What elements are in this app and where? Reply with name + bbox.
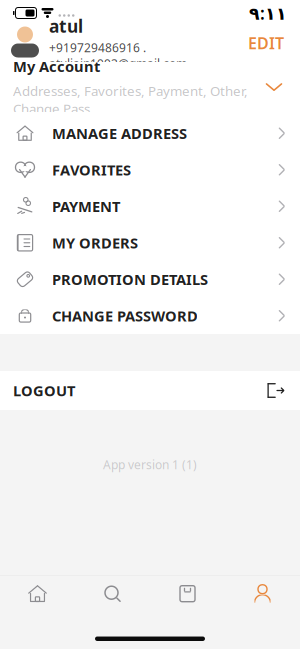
staticText: LOGOUT [13, 381, 75, 400]
button[interactable]: FAVORITES [0, 151, 300, 188]
staticText: MY ORDERS [52, 233, 138, 252]
button[interactable]: PROMOTION DETAILS [0, 261, 300, 297]
button[interactable]: Account [225, 576, 300, 612]
button[interactable]: MY ORDERS [0, 224, 300, 261]
button[interactable]: PAYMENT [0, 188, 300, 224]
staticText: Addresses, Favorites, Payment, Other, Ch… [13, 82, 248, 117]
button[interactable]: LOGOUT [0, 371, 300, 410]
staticText: My Account [13, 57, 100, 76]
staticText: +919729486916 . atuljain1993@gmail.com [49, 40, 187, 71]
button[interactable]: My Account [0, 62, 300, 112]
staticText: atul [49, 15, 83, 38]
button[interactable]: MANAGE ADDRESS [0, 115, 300, 151]
staticText: App version 1 (1) [103, 456, 197, 472]
staticText: PROMOTION DETAILS [52, 269, 208, 289]
button[interactable]: EDIT [238, 26, 294, 60]
button[interactable]: Home [0, 576, 75, 612]
staticText: ٩:١١ [249, 1, 287, 24]
button[interactable]: Search [75, 576, 150, 612]
staticText: CHANGE PASSWORD [52, 306, 198, 325]
staticText: EDIT [248, 32, 284, 54]
staticText: MANAGE ADDRESS [52, 123, 187, 143]
staticText: PAYMENT [52, 196, 120, 216]
button[interactable]: Bag [150, 576, 225, 612]
staticText: FAVORITES [52, 160, 131, 179]
button[interactable]: CHANGE PASSWORD [0, 297, 300, 334]
